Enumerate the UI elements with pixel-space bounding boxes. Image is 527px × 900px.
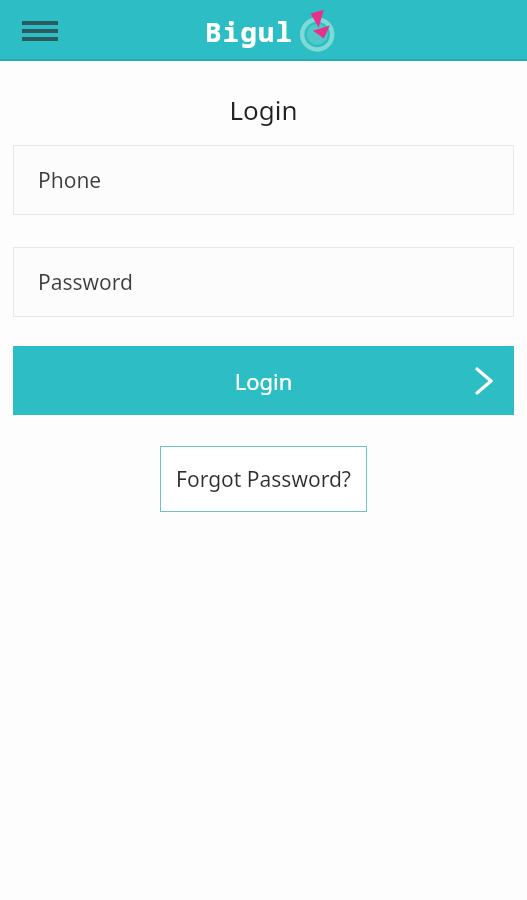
button[interactable]: Login xyxy=(13,346,514,415)
staticText: Login xyxy=(13,366,514,396)
button[interactable]: Forgot Password? xyxy=(160,446,367,512)
button[interactable]: Phone xyxy=(13,145,514,215)
staticText: Password xyxy=(38,268,133,297)
staticText: Phone xyxy=(38,166,102,195)
staticText: Login xyxy=(0,92,527,127)
button[interactable]: Open navigation menu xyxy=(14,5,66,57)
button[interactable]: Password xyxy=(13,247,514,317)
staticText: Bigul xyxy=(205,13,294,50)
staticText: Forgot Password? xyxy=(176,465,351,494)
